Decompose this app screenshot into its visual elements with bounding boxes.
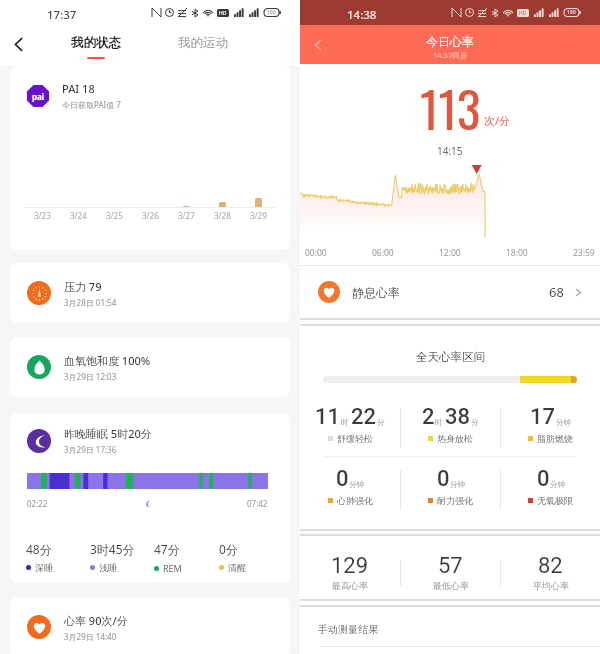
staticText: 100	[267, 9, 276, 16]
staticText: 舒缓轻松	[337, 433, 373, 444]
staticText: 48分	[26, 541, 52, 557]
staticText: PAI 18	[62, 81, 95, 96]
staticText: 3/27	[178, 210, 195, 221]
staticText: 02:22	[27, 498, 48, 509]
staticText: HD	[519, 10, 527, 17]
staticText: 0	[437, 466, 450, 492]
staticText: 22	[351, 404, 377, 430]
staticText: 0	[336, 466, 349, 492]
staticText: 0	[537, 466, 550, 492]
staticText: 113	[420, 72, 481, 145]
button[interactable]: 心率 90次/分	[10, 597, 290, 654]
staticText: 我的运动	[178, 35, 228, 51]
staticText: 17	[530, 404, 556, 430]
staticText: HD	[219, 10, 227, 17]
staticText: 07:42	[247, 498, 268, 509]
staticText: 浅睡	[99, 562, 117, 573]
staticText: 17:37	[47, 7, 77, 23]
staticText: 我的状态	[71, 35, 121, 51]
button[interactable]: 我的状态	[50, 25, 141, 66]
staticText: 深睡	[35, 562, 53, 573]
staticText: 耐力强化	[437, 495, 473, 506]
staticText: 3月29日 14:40	[64, 631, 117, 642]
staticText: 今日获取PAI值 7	[62, 99, 121, 110]
staticText: 分钟	[556, 418, 571, 427]
staticText: 2	[422, 404, 435, 430]
staticText: 脂肪燃烧	[537, 433, 573, 444]
staticText: 分钟	[349, 480, 364, 489]
button[interactable]: pai	[10, 66, 290, 250]
staticText: 全天心率区间	[416, 350, 485, 364]
staticText: 3时45分	[90, 541, 135, 557]
staticText: REM	[163, 562, 182, 574]
staticText: 68	[549, 283, 564, 301]
staticText: 47分	[154, 541, 180, 557]
staticText: 心肺强化	[337, 495, 373, 506]
staticText: 3/25	[106, 210, 123, 221]
staticText: 3/26	[142, 210, 159, 221]
staticText: 最低心率	[433, 580, 469, 591]
button[interactable]: Back	[0, 26, 36, 62]
staticText: 12:00	[439, 247, 461, 259]
staticText: 3/29	[250, 210, 267, 221]
staticText: 昨晚睡眠 5时20分	[64, 426, 152, 441]
staticText: 压力 79	[64, 279, 102, 294]
staticText: 3月29日 12:03	[64, 371, 117, 382]
staticText: 分	[471, 418, 479, 427]
staticText: 分钟	[550, 480, 565, 489]
staticText: 14:37同步	[433, 50, 468, 60]
staticText: 清醒	[228, 562, 246, 573]
staticText: 129	[331, 553, 369, 579]
staticText: 14:15	[437, 144, 463, 158]
staticText: 3/24	[70, 210, 87, 221]
staticText: 14:38	[347, 7, 377, 23]
staticText: 0分	[219, 541, 238, 557]
staticText: 06:00	[372, 247, 394, 259]
staticText: 最高心率	[332, 580, 368, 591]
staticText: 今日心率	[426, 34, 474, 49]
staticText: 11	[315, 404, 341, 430]
staticText: 时	[435, 418, 443, 427]
staticText: 分	[377, 418, 385, 427]
staticText: 无氧极限	[537, 495, 573, 506]
staticText: 分钟	[450, 480, 465, 489]
staticText: 3月28日 01:54	[64, 297, 117, 308]
staticText: 热身放松	[437, 433, 473, 444]
staticText: 3月29日 17:36	[64, 444, 117, 455]
staticText: 82	[538, 553, 563, 579]
button[interactable]: 昨晚睡眠 5时20分	[10, 413, 290, 583]
staticText: 00:00	[305, 247, 327, 259]
staticText: 心率 90次/分	[64, 613, 128, 628]
staticText: 血氧饱和度 100%	[64, 353, 151, 368]
staticText: pai	[32, 91, 45, 102]
staticText: 手动测量结果	[318, 623, 378, 636]
button[interactable]: 我的运动	[157, 25, 248, 66]
staticText: 3/28	[214, 210, 231, 221]
staticText: 平均心率	[533, 580, 569, 591]
button[interactable]: 血氧饱和度 100%	[10, 337, 290, 397]
staticText: 静息心率	[352, 285, 400, 300]
staticText: 时	[341, 418, 349, 427]
staticText: 23:59	[573, 247, 595, 259]
button[interactable]: 静息心率	[300, 266, 600, 318]
button[interactable]: Back	[300, 27, 336, 63]
button[interactable]: 压力 79	[10, 263, 290, 323]
staticText: 次/分	[484, 113, 511, 128]
staticText: 57	[438, 553, 463, 579]
staticText: 18:00	[506, 247, 528, 259]
staticText: 100	[567, 9, 576, 16]
staticText: 3/23	[34, 210, 51, 221]
staticText: 38	[445, 404, 471, 430]
